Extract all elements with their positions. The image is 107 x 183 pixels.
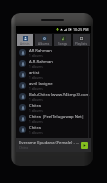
staticText: Albums (38, 42, 50, 46)
button[interactable]: AR Rahman (16, 47, 91, 58)
staticText: artist (29, 70, 40, 76)
button[interactable]: Chitra |FeelTeluguwap Net| (16, 113, 91, 124)
button[interactable]: Albums (35, 34, 52, 46)
button[interactable]: Artists (17, 34, 33, 46)
button[interactable]: Songs (54, 34, 71, 46)
button[interactable]: A.R.Rahman (16, 58, 91, 69)
staticText: AR Rahman (29, 48, 52, 54)
staticText: 1 albums (29, 131, 43, 135)
button[interactable]: Chitra (16, 124, 91, 135)
staticText: Chitra (29, 103, 41, 109)
staticText: 1 albums (29, 120, 43, 124)
button[interactable]: BoluChitra (www.Y4kmp3).com (16, 91, 91, 102)
staticText: 1 albums (29, 76, 43, 80)
button[interactable]: Play (81, 142, 88, 149)
staticText: avril lavigne (29, 81, 53, 87)
button[interactable]: artist (16, 69, 91, 80)
staticText: Everame Epudana (Female) - Tel... (19, 140, 81, 146)
staticText: 10:25 PM (73, 27, 89, 32)
staticText: BoluChitra (www.Y4kmp3).com (29, 92, 90, 98)
staticText: Songs (58, 42, 68, 46)
staticText: 1 albums (29, 54, 43, 58)
staticText: 1 albums (29, 87, 43, 91)
button[interactable]: Playlists (73, 34, 90, 46)
staticText: Chitra (29, 125, 41, 131)
staticText: 1 albums (29, 65, 43, 69)
staticText: Playlists (75, 42, 88, 46)
button[interactable]: avril lavigne (16, 80, 91, 91)
staticText: 1 albums (29, 98, 43, 102)
staticText: 1 albums (29, 109, 43, 113)
staticText: Artists (20, 42, 30, 46)
button[interactable]: Chitra (16, 102, 91, 113)
staticText: Chitra |FeelTeluguwap Net| (29, 114, 85, 120)
button[interactable]: Everame Epudana (Female) - Tel... (16, 138, 91, 152)
staticText: Chitra (19, 146, 28, 150)
staticText: A.R.Rahman (29, 59, 53, 65)
